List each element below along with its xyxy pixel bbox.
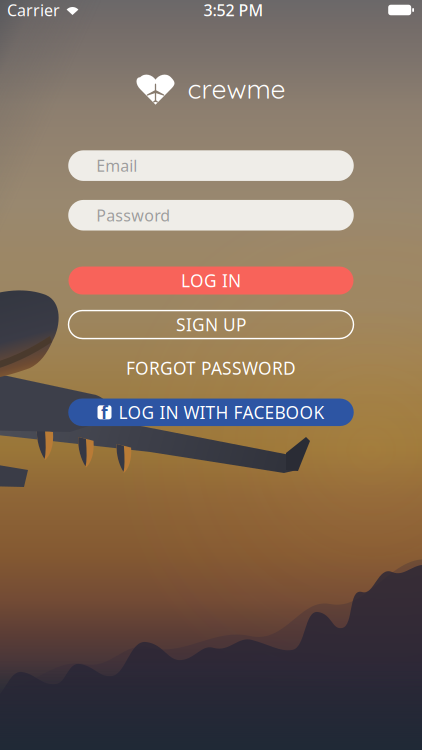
button[interactable]: Password	[68, 200, 354, 230]
button[interactable]: f	[68, 399, 354, 426]
staticText: Password	[96, 205, 170, 226]
button[interactable]: SIGN UP	[68, 310, 353, 338]
staticText: 3:52 PM	[204, 0, 264, 21]
staticText: Email	[96, 155, 137, 176]
staticText: FORGOT PASSWORD	[126, 356, 296, 379]
button[interactable]: LOG IN	[68, 266, 353, 294]
button[interactable]: Email	[68, 150, 354, 181]
staticText: SIGN UP	[176, 313, 246, 336]
staticText: LOG IN WITH FACEBOOK	[118, 401, 324, 424]
staticText: crewme	[187, 72, 285, 105]
button[interactable]: FORGOT PASSWORD	[114, 351, 308, 384]
staticText: f	[101, 401, 108, 424]
staticText: LOG IN	[181, 269, 241, 292]
staticText: Carrier	[7, 0, 60, 21]
